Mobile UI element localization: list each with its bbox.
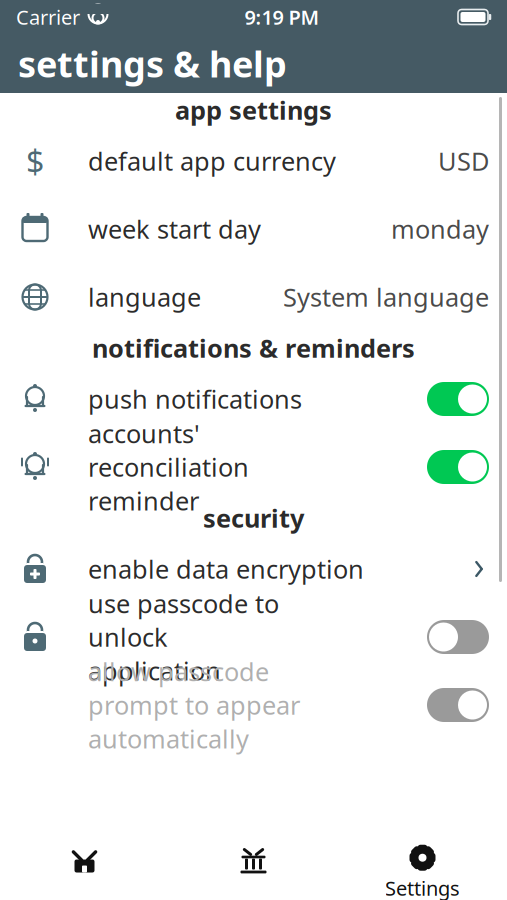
staticText: security: [203, 501, 304, 535]
button[interactable]: $: [0, 127, 507, 195]
button[interactable]: Settings: [338, 846, 507, 900]
staticText: Settings: [385, 875, 460, 900]
button[interactable]: enable data encryption: [0, 535, 507, 603]
staticText: use passcode to unlock application: [88, 586, 279, 687]
staticText: System language: [283, 280, 489, 314]
staticText: enable data encryption: [88, 552, 364, 586]
staticText: week start day: [88, 212, 261, 246]
button[interactable]: language: [0, 263, 507, 331]
staticText: monday: [391, 212, 489, 246]
staticText: settings & help: [18, 40, 287, 87]
staticText: 9:19 PM: [244, 4, 319, 30]
staticText: notifications & reminders: [92, 331, 415, 365]
button[interactable]: Home: [0, 846, 169, 900]
staticText: allow passcode prompt to appear automati…: [88, 654, 300, 755]
button[interactable]: use passcode to unlock application: [0, 603, 507, 671]
button[interactable]: accounts' reconciliation reminder: [0, 433, 507, 501]
staticText: accounts' reconciliation reminder: [88, 416, 249, 517]
button[interactable]: push notifications: [0, 365, 507, 433]
button[interactable]: allow passcode prompt to appear automati…: [0, 671, 507, 739]
staticText: default app currency: [88, 144, 336, 178]
staticText: Carrier: [16, 4, 80, 30]
staticText: app settings: [175, 93, 332, 127]
staticText: push notifications: [88, 382, 302, 416]
staticText: $: [26, 140, 44, 182]
button[interactable]: Accounts: [169, 846, 338, 900]
staticText: USD: [438, 144, 489, 178]
staticText: language: [88, 280, 201, 314]
button[interactable]: week start day: [0, 195, 507, 263]
